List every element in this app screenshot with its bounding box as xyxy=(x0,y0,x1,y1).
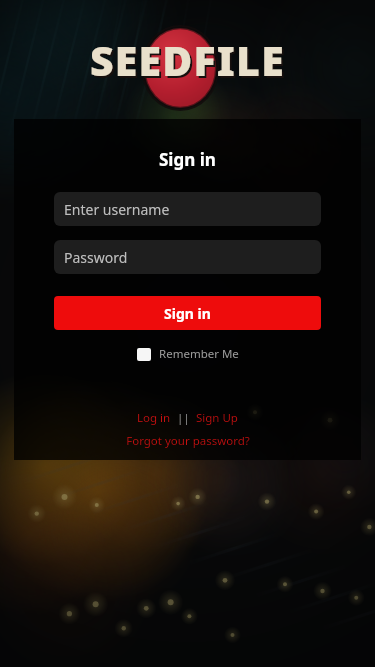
staticText: Sign in xyxy=(159,148,216,171)
button[interactable]: Sign in xyxy=(54,296,321,330)
staticText: || xyxy=(177,410,190,426)
button[interactable]: Enter username xyxy=(54,192,321,226)
button[interactable]: Forgot your password? xyxy=(122,432,254,450)
staticText: Sign in xyxy=(164,304,211,323)
button[interactable]: Log in xyxy=(134,409,174,427)
staticText: Password xyxy=(64,248,128,267)
staticText: SEEDFILE xyxy=(90,32,285,88)
staticText: Enter username xyxy=(64,200,170,219)
button[interactable]: Password xyxy=(54,240,321,274)
staticText: SEEDFILE xyxy=(92,34,287,90)
staticText: Remember Me xyxy=(159,346,239,362)
staticText: Log in xyxy=(137,410,171,426)
button[interactable]: Remember Me xyxy=(133,344,243,364)
staticText: Forgot your password? xyxy=(126,433,250,449)
staticText: Sign Up xyxy=(196,410,238,426)
button[interactable]: Sign Up xyxy=(193,409,241,427)
